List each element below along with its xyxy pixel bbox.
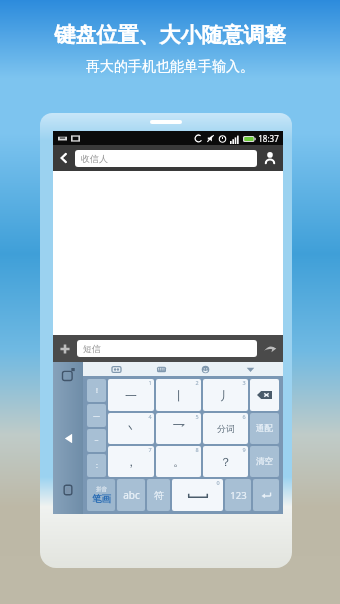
- button[interactable]: Backspace: [250, 379, 279, 411]
- button[interactable]: 符: [147, 479, 170, 511]
- staticText: abc: [123, 488, 140, 502]
- staticText: 通配: [256, 423, 273, 434]
- button[interactable]: 短信: [77, 340, 257, 357]
- button[interactable]: Back: [53, 145, 75, 171]
- button[interactable]: 拼音: [87, 479, 115, 511]
- staticText: ？: [220, 454, 232, 469]
- staticText: 键盘位置、大小随意调整: [0, 22, 340, 48]
- staticText: 18:37: [258, 133, 279, 144]
- button[interactable]: 一: [108, 379, 154, 411]
- staticText: ~: [94, 436, 99, 446]
- staticText: 符: [154, 489, 164, 502]
- button[interactable]: ？: [203, 446, 248, 477]
- staticText: 丨: [173, 388, 185, 403]
- button[interactable]: Resize keyboard: [60, 366, 76, 382]
- button[interactable]: Emoji: [194, 362, 216, 376]
- staticText: !: [96, 386, 98, 396]
- button[interactable]: :: [87, 454, 106, 477]
- button[interactable]: Space: [172, 479, 223, 511]
- staticText: 收信人: [81, 153, 108, 164]
- button[interactable]: Move keyboard left: [58, 428, 78, 448]
- staticText: 3: [242, 379, 246, 386]
- staticText: 再大的手机也能单手输入。: [0, 58, 340, 76]
- button[interactable]: abc: [117, 479, 145, 511]
- button[interactable]: Enter: [253, 479, 279, 511]
- staticText: 丶: [125, 421, 137, 436]
- staticText: 分词: [217, 423, 235, 434]
- staticText: 8: [195, 446, 199, 453]
- button[interactable]: Input settings: [105, 362, 127, 376]
- button[interactable]: One hand mode: [60, 482, 76, 498]
- button[interactable]: 乛: [156, 413, 201, 444]
- button[interactable]: 清空: [250, 446, 279, 477]
- button[interactable]: 丿: [203, 379, 248, 411]
- button[interactable]: —: [87, 404, 106, 427]
- button[interactable]: Send: [257, 335, 283, 362]
- button[interactable]: 丨: [156, 379, 201, 411]
- button[interactable]: ，: [108, 446, 154, 477]
- button[interactable]: 。: [156, 446, 201, 477]
- staticText: 拼音: [96, 486, 107, 493]
- staticText: 。: [173, 454, 185, 469]
- button[interactable]: 123: [225, 479, 251, 511]
- staticText: 9: [242, 446, 246, 453]
- button[interactable]: Hide keyboard: [239, 362, 261, 376]
- staticText: 笔画: [92, 493, 111, 505]
- staticText: —: [93, 411, 100, 421]
- staticText: 1: [148, 379, 152, 386]
- button[interactable]: 收信人: [75, 150, 257, 167]
- staticText: ，: [125, 454, 137, 469]
- staticText: :: [96, 461, 98, 471]
- staticText: 一: [125, 388, 137, 403]
- button[interactable]: ~: [87, 429, 106, 452]
- staticText: 5: [195, 413, 199, 420]
- staticText: 丿: [220, 388, 232, 403]
- staticText: 7: [148, 446, 152, 453]
- staticText: 0: [216, 479, 220, 486]
- button[interactable]: 通配: [250, 413, 279, 444]
- staticText: 4: [148, 413, 152, 420]
- staticText: 2: [195, 379, 199, 386]
- staticText: 短信: [83, 343, 101, 354]
- button[interactable]: Contacts: [257, 145, 283, 171]
- button[interactable]: !: [87, 379, 106, 402]
- button[interactable]: 分词: [203, 413, 248, 444]
- staticText: 6: [242, 413, 246, 420]
- button[interactable]: 丶: [108, 413, 154, 444]
- staticText: 清空: [256, 456, 273, 467]
- button[interactable]: Attach: [53, 335, 77, 362]
- staticText: 123: [230, 489, 247, 502]
- button[interactable]: Keyboard layout: [150, 362, 172, 376]
- staticText: 乛: [173, 421, 185, 436]
